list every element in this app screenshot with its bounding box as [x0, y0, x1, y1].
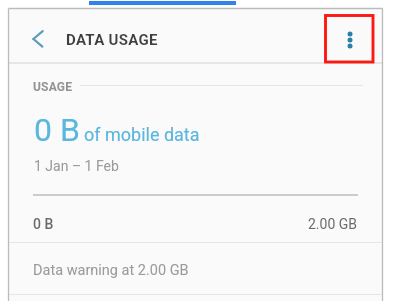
staticText: of mobile data — [84, 124, 200, 145]
staticText: DATA USAGE — [66, 31, 158, 49]
button[interactable]: Navigate up — [21, 22, 55, 56]
staticText: USAGE — [33, 80, 73, 94]
button[interactable]: More options — [326, 16, 373, 63]
staticText: 2.00 GB — [308, 216, 358, 232]
staticText: 0 B — [34, 111, 80, 149]
button[interactable]: DATA USAGE — [59, 23, 179, 57]
staticText: Data warning at 2.00 GB — [33, 262, 189, 279]
staticText: 1 Jan – 1 Feb — [34, 158, 119, 174]
staticText: 0 B — [33, 216, 54, 232]
button[interactable]: Data warning at 2.00 GB — [8, 244, 383, 294]
